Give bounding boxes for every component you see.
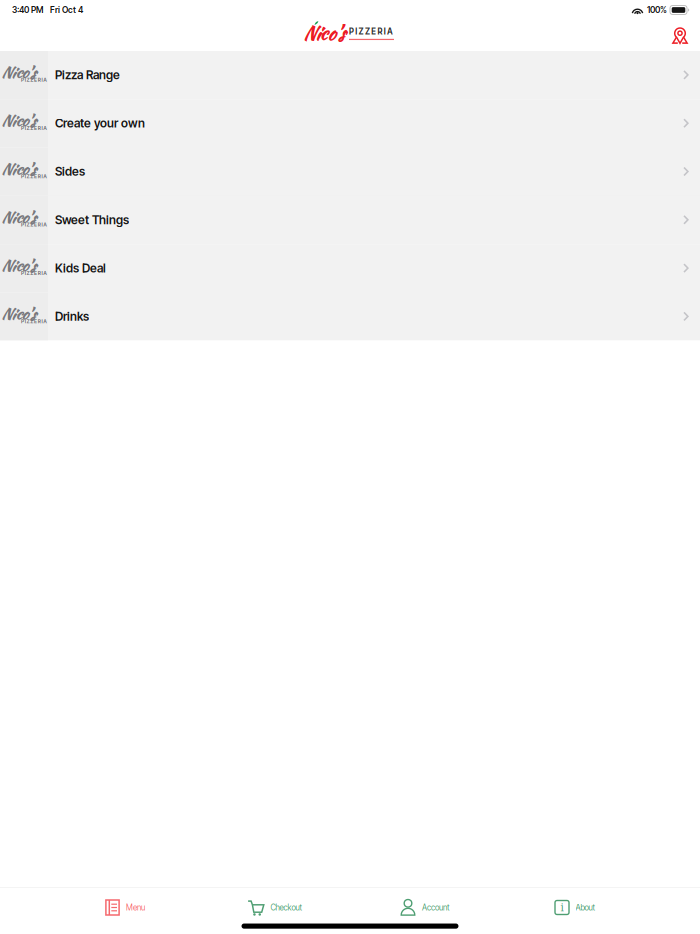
- staticText: 3:40 PM: [12, 5, 43, 15]
- staticText: Account: [422, 903, 450, 912]
- staticText: PIZZERIA: [21, 125, 47, 131]
- staticText: Nico's: [1, 206, 35, 228]
- staticText: Fri Oct 4: [50, 5, 83, 15]
- staticText: Nico's: [1, 109, 35, 132]
- staticText: Menu: [126, 903, 145, 912]
- staticText: 100%: [647, 5, 667, 15]
- staticText: PIZZERIA: [21, 318, 47, 324]
- staticText: Nico's: [1, 303, 35, 325]
- staticText: PIZZERIA: [349, 27, 393, 36]
- button[interactable]: Nico's: [0, 292, 700, 340]
- staticText: PIZZERIA: [21, 270, 47, 276]
- staticText: Nico's: [1, 254, 35, 277]
- staticText: Nico's: [303, 20, 344, 46]
- button[interactable]: Nico's: [0, 196, 700, 244]
- staticText: Nico's: [1, 158, 35, 180]
- button[interactable]: Account: [350, 885, 500, 925]
- staticText: Drinks: [55, 309, 89, 324]
- staticText: About: [575, 903, 595, 912]
- button[interactable]: i: [500, 885, 650, 925]
- staticText: Nico's: [1, 61, 35, 83]
- button[interactable]: Nico's: [0, 99, 700, 147]
- staticText: Sweet Things: [55, 212, 129, 227]
- staticText: Kids Deal: [55, 261, 106, 275]
- staticText: Create your own: [55, 116, 145, 130]
- staticText: PIZZERIA: [21, 77, 47, 83]
- staticText: Checkout: [270, 903, 302, 912]
- button[interactable]: Nico's: [0, 51, 700, 99]
- staticText: PIZZERIA: [21, 222, 47, 228]
- staticText: Sides: [55, 164, 85, 179]
- button[interactable]: Checkout: [200, 885, 350, 925]
- button[interactable]: Nico's: [0, 148, 700, 195]
- staticText: i: [560, 901, 563, 914]
- button[interactable]: Store locator: [660, 20, 700, 51]
- button[interactable]: Menu: [50, 885, 200, 925]
- staticText: Pizza Range: [55, 68, 120, 82]
- button[interactable]: Nico's: [0, 244, 700, 292]
- staticText: PIZZERIA: [21, 173, 47, 179]
